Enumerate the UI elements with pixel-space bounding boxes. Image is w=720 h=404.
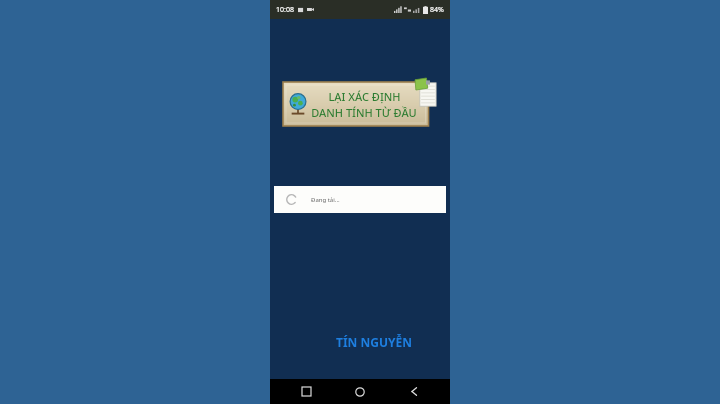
button[interactable]: Đang tải... xyxy=(274,186,446,213)
button[interactable]: Home xyxy=(342,379,378,404)
staticText: 10:08 xyxy=(276,5,294,15)
staticText: TÍN NGUYỄN xyxy=(336,334,412,350)
staticText: Đang tải... xyxy=(311,196,340,204)
staticText: 84% xyxy=(430,5,444,15)
staticText: LẠI XÁC ĐỊNH xyxy=(328,89,401,104)
button[interactable]: Recents xyxy=(288,379,324,404)
staticText: DANH TÍNH TỪ ĐẦU xyxy=(311,105,417,120)
button[interactable]: Back xyxy=(396,379,432,404)
